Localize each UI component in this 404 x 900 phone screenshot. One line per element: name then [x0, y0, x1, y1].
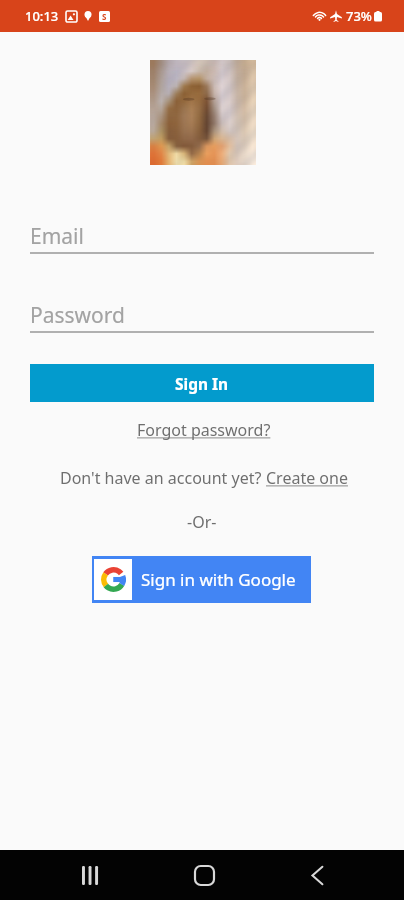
button[interactable]: Create one — [266, 467, 348, 489]
button[interactable]: Sign In — [30, 364, 374, 402]
staticText: Sign In — [175, 373, 229, 394]
button[interactable]: Sign in with Google — [92, 556, 311, 603]
staticText: S — [102, 11, 107, 22]
button[interactable]: Home — [180, 851, 228, 899]
staticText: 10:13 — [25, 7, 59, 25]
staticText: Create one — [266, 467, 348, 489]
staticText: Don't have an account yet? — [60, 467, 266, 489]
staticText: Password — [30, 301, 125, 330]
staticText: Forgot password? — [137, 419, 271, 441]
button[interactable]: Back — [293, 851, 341, 899]
staticText: 73% — [346, 7, 372, 25]
staticText: Email — [30, 222, 84, 251]
staticText: Sign in with Google — [141, 568, 296, 591]
button[interactable]: Forgot password? — [127, 416, 277, 444]
staticText: -Or- — [187, 511, 217, 533]
button[interactable]: Recent apps — [67, 851, 115, 899]
